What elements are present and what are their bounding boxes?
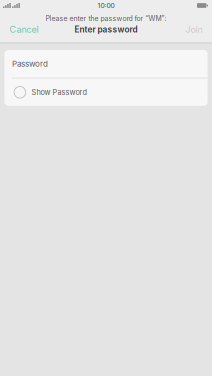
staticText: Join bbox=[185, 24, 202, 35]
staticText: Please enter the password for “WM”: bbox=[45, 14, 166, 23]
button[interactable]: Cancel bbox=[10, 21, 47, 38]
staticText: Enter password bbox=[74, 24, 137, 34]
staticText: Show Password bbox=[31, 88, 86, 97]
button[interactable]: Show Password bbox=[4, 79, 208, 106]
staticText: 10:00 bbox=[97, 1, 114, 10]
button[interactable]: Join bbox=[177, 21, 202, 38]
staticText: Cancel bbox=[10, 24, 39, 35]
staticText: Password bbox=[12, 59, 48, 69]
